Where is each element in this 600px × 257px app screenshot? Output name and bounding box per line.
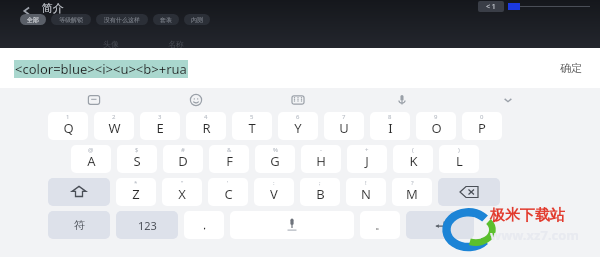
button[interactable]: 7 bbox=[324, 112, 364, 140]
staticText: 全部 bbox=[27, 16, 39, 24]
staticText: Q bbox=[63, 119, 74, 137]
button[interactable]: 123 bbox=[116, 211, 178, 239]
staticText: ; bbox=[319, 179, 321, 187]
button[interactable]: ; bbox=[300, 178, 340, 206]
staticText: 。 bbox=[375, 218, 386, 232]
staticText: U bbox=[339, 119, 349, 137]
button[interactable]: Handwriting bbox=[84, 90, 104, 110]
button[interactable]: 2 bbox=[94, 112, 134, 140]
button[interactable]: 内测 bbox=[184, 14, 210, 25]
staticText: Y bbox=[294, 119, 302, 137]
staticText: 没有什么这样 bbox=[104, 16, 140, 24]
staticText: 头像 bbox=[103, 39, 119, 49]
button[interactable]: ， bbox=[184, 211, 224, 239]
staticText: 1 bbox=[66, 113, 70, 121]
button[interactable]: ! bbox=[346, 178, 386, 206]
staticText: ) bbox=[458, 146, 460, 154]
staticText: 8 bbox=[388, 113, 392, 121]
button[interactable]: 确定 bbox=[560, 61, 582, 75]
button[interactable]: Shift bbox=[48, 178, 110, 206]
staticText: 4 bbox=[204, 113, 208, 121]
staticText: & bbox=[227, 146, 232, 154]
button[interactable]: + bbox=[347, 145, 387, 173]
staticText: C bbox=[224, 185, 233, 203]
staticText: 内测 bbox=[191, 16, 203, 24]
staticText: 3 bbox=[158, 113, 162, 121]
button[interactable]: % bbox=[255, 145, 295, 173]
staticText: @ bbox=[88, 146, 94, 154]
staticText: - bbox=[320, 146, 322, 154]
staticText: F bbox=[226, 152, 233, 170]
button[interactable]: 9 bbox=[416, 112, 456, 140]
staticText: Z bbox=[132, 185, 140, 203]
staticText: <color=blue><i><u><b>+rua bbox=[15, 60, 187, 78]
staticText: K bbox=[409, 152, 418, 170]
staticText: ， bbox=[199, 218, 210, 232]
staticText: 6 bbox=[296, 113, 300, 121]
staticText: 123 bbox=[138, 218, 157, 233]
button[interactable]: Emoji bbox=[186, 90, 206, 110]
staticText: $ bbox=[135, 146, 139, 154]
staticText: B bbox=[316, 185, 325, 203]
staticText: I bbox=[388, 119, 393, 137]
staticText: # bbox=[181, 146, 185, 154]
staticText: H bbox=[316, 152, 326, 170]
staticText: R bbox=[202, 119, 211, 137]
button[interactable]: 3 bbox=[140, 112, 180, 140]
staticText: 极米下载站 bbox=[490, 206, 565, 225]
button[interactable]: 等级解锁 bbox=[51, 14, 91, 25]
button[interactable]: Hide keyboard bbox=[498, 90, 518, 110]
staticText: M bbox=[406, 185, 418, 203]
staticText: N bbox=[361, 185, 371, 203]
button[interactable]: Backspace bbox=[438, 178, 500, 206]
button[interactable]: 0 bbox=[462, 112, 502, 140]
button[interactable]: # bbox=[163, 145, 203, 173]
staticText: 5 bbox=[250, 113, 254, 121]
button[interactable]: 4 bbox=[186, 112, 226, 140]
staticText: 2 bbox=[112, 113, 116, 121]
staticText: ! bbox=[365, 179, 367, 187]
button[interactable]: - bbox=[301, 145, 341, 173]
button[interactable]: 5 bbox=[232, 112, 272, 140]
button[interactable]: ? bbox=[392, 178, 432, 206]
staticText: 0 bbox=[480, 113, 484, 121]
button[interactable]: ( bbox=[393, 145, 433, 173]
button[interactable]: $ bbox=[117, 145, 157, 173]
button[interactable]: 全部 bbox=[20, 14, 46, 25]
staticText: ' bbox=[227, 179, 229, 187]
staticText: 9 bbox=[434, 113, 438, 121]
button[interactable]: ' bbox=[208, 178, 248, 206]
staticText: 等级解锁 bbox=[59, 16, 83, 24]
button[interactable]: " bbox=[162, 178, 202, 206]
staticText: < 1 bbox=[486, 2, 496, 12]
staticText: 符 bbox=[74, 218, 85, 232]
staticText: J bbox=[365, 152, 369, 170]
button[interactable]: 1 bbox=[48, 112, 88, 140]
button[interactable]: Keyboard layout bbox=[288, 90, 308, 110]
button[interactable]: 没有什么这样 bbox=[96, 14, 148, 25]
staticText: ? bbox=[411, 179, 414, 187]
button[interactable]: * bbox=[116, 178, 156, 206]
button[interactable]: Space bbox=[230, 211, 354, 239]
staticText: O bbox=[431, 119, 442, 137]
staticText: E bbox=[156, 119, 164, 137]
staticText: 7 bbox=[342, 113, 346, 121]
button[interactable]: 。 bbox=[360, 211, 400, 239]
button[interactable]: 6 bbox=[278, 112, 318, 140]
button[interactable]: ) bbox=[439, 145, 479, 173]
button[interactable]: Enter bbox=[406, 211, 474, 239]
button[interactable]: & bbox=[209, 145, 249, 173]
staticText: V bbox=[270, 185, 278, 203]
staticText: S bbox=[133, 152, 141, 170]
button[interactable]: 套装 bbox=[153, 14, 179, 25]
button[interactable]: @ bbox=[71, 145, 111, 173]
button[interactable]: : bbox=[254, 178, 294, 206]
staticText: 简介 bbox=[42, 1, 64, 15]
staticText: % bbox=[273, 146, 278, 154]
staticText: ( bbox=[412, 146, 414, 154]
button[interactable]: 符 bbox=[48, 211, 110, 239]
staticText: 名称 bbox=[168, 39, 184, 49]
button[interactable]: Voice input bbox=[392, 90, 412, 110]
staticText: + bbox=[365, 146, 369, 154]
button[interactable]: 8 bbox=[370, 112, 410, 140]
